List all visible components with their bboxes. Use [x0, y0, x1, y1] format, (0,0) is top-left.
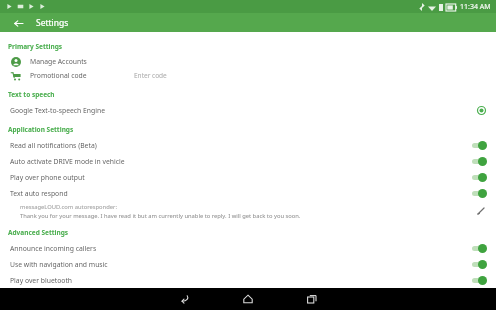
button[interactable]: Announce incoming callers [0, 240, 496, 256]
staticText: messageLOUD.com autoresponder: [20, 203, 117, 211]
staticText: Advanced Settings [8, 228, 69, 237]
button[interactable]: Read all notifications (Beta) [0, 137, 496, 153]
staticText: Primary Settings [8, 42, 63, 51]
staticText: Play over phone output [10, 173, 472, 182]
button[interactable]: messageLOUD.com autoresponder: [0, 201, 496, 221]
button[interactable]: Google Text-to-speech Engine [0, 102, 496, 118]
button[interactable]: Home [231, 288, 265, 310]
button[interactable]: Back [10, 15, 26, 31]
staticText: Text auto respond [10, 189, 472, 198]
button[interactable]: Text auto respond [0, 185, 496, 201]
staticText: Auto activate DRIVE mode in vehicle [10, 157, 472, 166]
staticText: Application Settings [8, 125, 74, 134]
staticText: Manage Accounts [30, 57, 87, 66]
staticText: Enter code [134, 71, 167, 80]
staticText: Read all notifications (Beta) [10, 141, 472, 150]
staticText: 11:34 AM [460, 2, 491, 12]
button[interactable]: Back [167, 288, 201, 310]
button[interactable]: Use with navigation and music [0, 256, 496, 272]
staticText: Promotional code [30, 71, 87, 80]
button[interactable]: Auto activate DRIVE mode in vehicle [0, 153, 496, 169]
button[interactable]: Play over phone output [0, 169, 496, 185]
staticText: Thank you for your message. I have read … [20, 212, 301, 220]
staticText: Announce incoming callers [10, 244, 472, 253]
button[interactable]: Recent apps [295, 288, 329, 310]
button[interactable]: Promotional code [0, 68, 496, 82]
staticText: Settings [36, 17, 69, 29]
button[interactable]: Edit auto response message [475, 205, 487, 217]
staticText: Play over bluetooth [10, 276, 472, 285]
button[interactable]: Play over bluetooth [0, 272, 496, 288]
staticText: Use with navigation and music [10, 260, 472, 269]
staticText: Text to speech [8, 90, 55, 99]
button[interactable]: Manage Accounts [0, 54, 496, 68]
staticText: Google Text-to-speech Engine [10, 106, 477, 115]
